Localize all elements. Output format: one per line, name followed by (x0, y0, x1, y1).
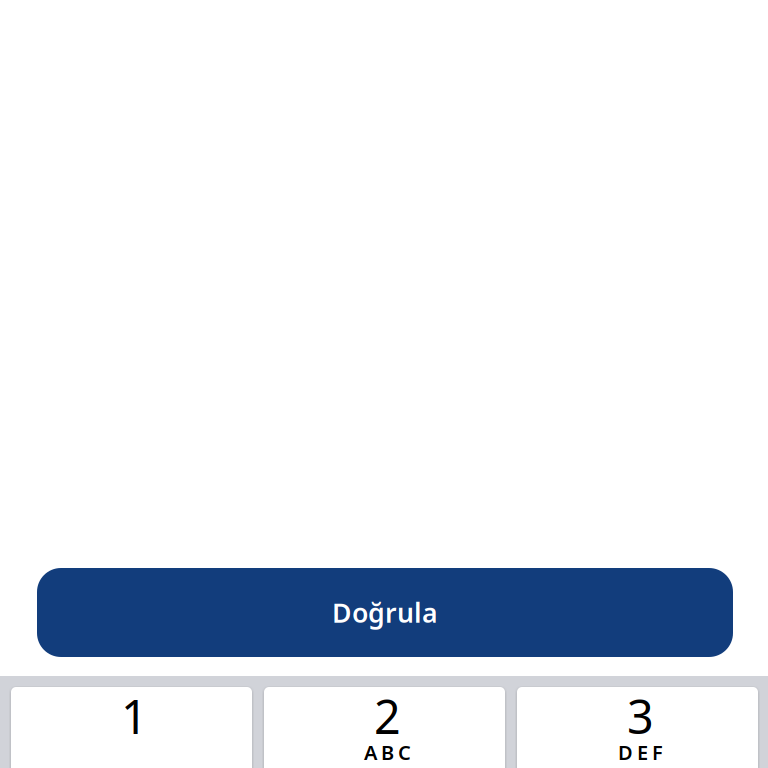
button[interactable]: Doğrula (37, 568, 733, 657)
staticText: 1 (121, 685, 148, 747)
button[interactable]: 3 DEF (517, 687, 758, 768)
staticText: ABC (364, 739, 411, 766)
staticText: 3 (627, 685, 654, 747)
staticText: 2 (374, 685, 401, 747)
button[interactable]: 1 (11, 687, 252, 768)
staticText: Doğrula (332, 595, 438, 630)
button[interactable]: 2 ABC (264, 687, 505, 768)
staticText: DEF (618, 739, 663, 766)
